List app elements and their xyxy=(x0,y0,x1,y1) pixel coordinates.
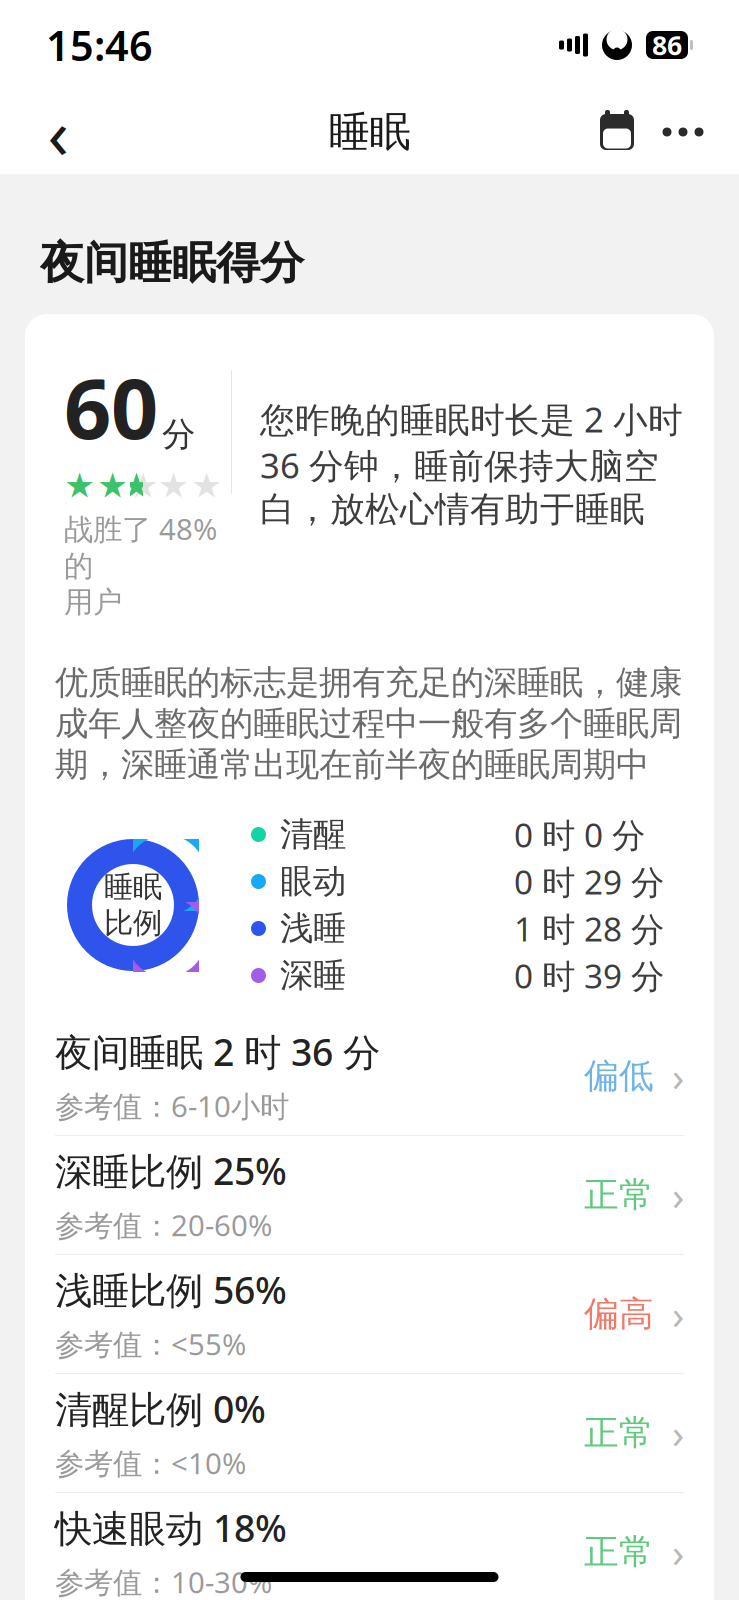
staticText: 参考值：20-60% xyxy=(55,1205,272,1244)
staticText: ★ xyxy=(191,466,222,505)
staticText: 清醒比例 0% xyxy=(55,1384,266,1433)
staticText: 夜间睡眠 2 时 36 分 xyxy=(55,1027,380,1076)
staticText: 战胜了 48% 的 用户 xyxy=(64,509,217,620)
staticText: 深睡 xyxy=(280,955,346,996)
staticText: 参考值：6-10小时 xyxy=(55,1086,289,1125)
staticText: › xyxy=(672,1168,684,1221)
staticText: 0 时 39 分 xyxy=(514,953,664,998)
staticText: 偏高 xyxy=(584,1293,654,1335)
button[interactable]: 返回 xyxy=(20,94,96,170)
staticText: 清醒 xyxy=(280,814,346,855)
staticText: ‹ xyxy=(47,86,68,178)
button[interactable]: 浅睡比例 56% xyxy=(55,1255,684,1373)
staticText: ★ xyxy=(121,466,152,505)
button[interactable]: 深睡比例 25% xyxy=(55,1136,684,1254)
staticText: 1 时 28 分 xyxy=(514,906,664,951)
button[interactable]: 清醒比例 0% xyxy=(55,1374,684,1492)
staticText: ★ xyxy=(64,466,95,505)
staticText: 偏低 xyxy=(584,1055,654,1097)
staticText: ★ xyxy=(127,466,158,505)
staticText: 参考值：<10% xyxy=(55,1443,246,1482)
staticText: 夜间睡眠得分 xyxy=(40,236,304,290)
staticText: 睡眠 比例 xyxy=(104,869,162,941)
staticText: › xyxy=(672,1406,684,1459)
staticText: 浅睡 xyxy=(280,908,346,949)
staticText: 睡眠 xyxy=(328,107,410,157)
staticText: ★ xyxy=(97,466,128,505)
staticText: 正常 xyxy=(584,1412,654,1454)
staticText: 15:46 xyxy=(46,18,153,72)
staticText: 分 xyxy=(162,414,195,455)
staticText: › xyxy=(672,1525,684,1578)
staticText: 60 xyxy=(64,352,158,462)
staticText: 您昨晚的睡眠时长是 2 小时 36 分钟，睡前保持大脑空白，放松心情有助于睡眠 xyxy=(260,396,683,531)
staticText: › xyxy=(672,1287,684,1340)
button[interactable]: 日历 xyxy=(587,102,647,162)
staticText: 86 xyxy=(652,27,682,63)
staticText: 0 时 29 分 xyxy=(514,859,664,904)
staticText: 正常 xyxy=(584,1174,654,1216)
staticText: 优质睡眠的标志是拥有充足的深睡眠，健康成年人整夜的睡眠过程中一般有多个睡眠周期，… xyxy=(55,662,682,785)
staticText: 参考值：10-30% xyxy=(55,1562,272,1600)
staticText: › xyxy=(672,1049,684,1102)
staticText: 浅睡比例 56% xyxy=(55,1265,287,1314)
button[interactable]: 夜间睡眠 2 时 36 分 xyxy=(55,1017,684,1135)
staticText: 眼动 xyxy=(280,861,346,902)
staticText: ★ xyxy=(158,466,189,505)
staticText: 正常 xyxy=(584,1531,654,1573)
staticText: 参考值：<55% xyxy=(55,1324,246,1363)
staticText: 快速眼动 18% xyxy=(55,1503,287,1552)
staticText: 深睡比例 25% xyxy=(55,1146,287,1195)
button[interactable]: 更多 xyxy=(647,102,719,162)
button[interactable]: 快速眼动 18% xyxy=(55,1493,684,1600)
staticText: 0 时 0 分 xyxy=(514,812,645,857)
